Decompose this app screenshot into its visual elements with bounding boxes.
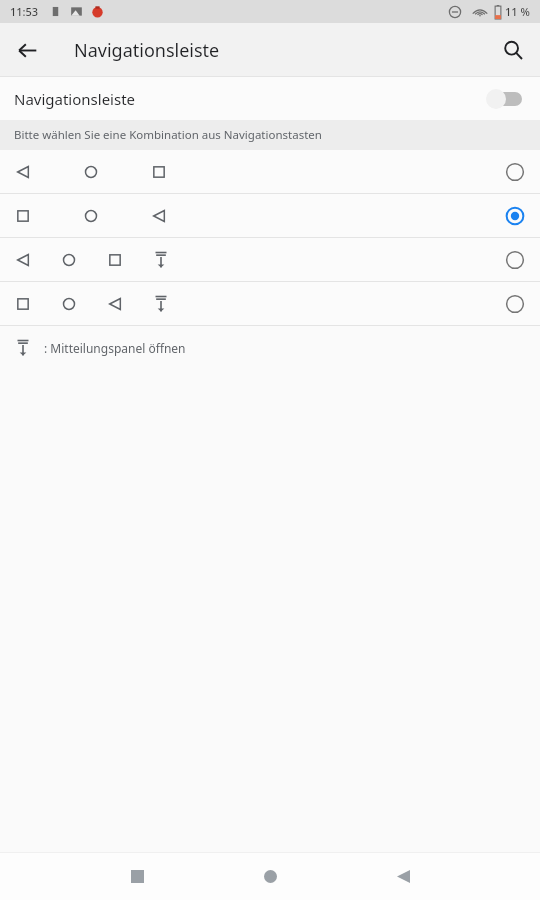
staticText: Bitte wählen Sie eine Kombination aus Na…: [14, 127, 322, 143]
button[interactable]: [0, 150, 540, 194]
staticText: Navigationsleiste: [74, 38, 220, 63]
button[interactable]: Back: [380, 853, 426, 899]
staticText: : Mitteilungspanel öffnen: [44, 340, 186, 356]
staticText: Navigationsleiste: [14, 89, 136, 109]
button[interactable]: [0, 282, 540, 326]
button[interactable]: Navigationsleiste: [0, 77, 540, 120]
button[interactable]: Home: [247, 853, 293, 899]
button[interactable]: Back: [0, 23, 54, 77]
button[interactable]: Recent apps: [114, 853, 160, 899]
staticText: 11:53: [10, 4, 39, 19]
button[interactable]: [0, 238, 540, 282]
staticText: 11 %: [505, 4, 530, 19]
button[interactable]: Search: [486, 23, 540, 77]
button[interactable]: [0, 194, 540, 238]
